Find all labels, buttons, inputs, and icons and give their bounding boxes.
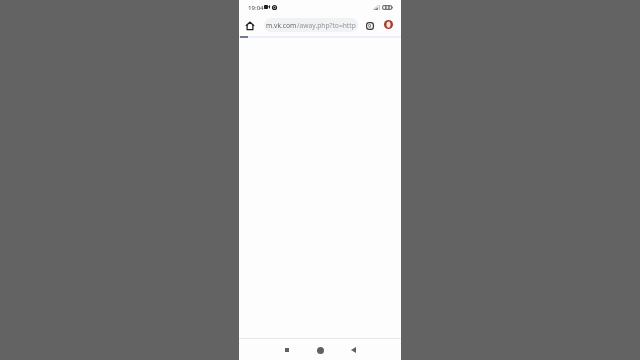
button[interactable]: Recents: [279, 342, 295, 358]
button[interactable]: Opera menu: [380, 16, 397, 33]
button[interactable]: Home: [312, 342, 328, 358]
staticText: 9: [368, 22, 372, 30]
button[interactable]: Home: [241, 17, 259, 35]
staticText: 19:04: [248, 3, 264, 11]
staticText: /away.php?to=http: [297, 21, 356, 30]
staticText: m.vk.com: [266, 21, 297, 30]
button[interactable]: Tabs: [361, 17, 378, 34]
button[interactable]: Back: [345, 342, 361, 358]
button[interactable]: m.vk.com: [264, 18, 358, 32]
